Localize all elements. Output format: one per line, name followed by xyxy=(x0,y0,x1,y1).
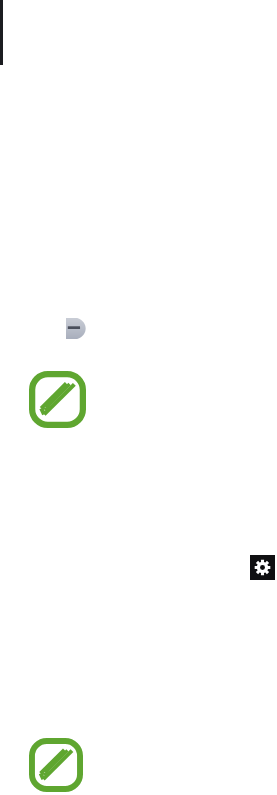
button[interactable]: S Note shortcut xyxy=(29,738,83,792)
button[interactable]: S Note xyxy=(29,371,86,428)
button[interactable]: Mode xyxy=(66,318,84,339)
button[interactable]: Settings xyxy=(250,555,275,580)
